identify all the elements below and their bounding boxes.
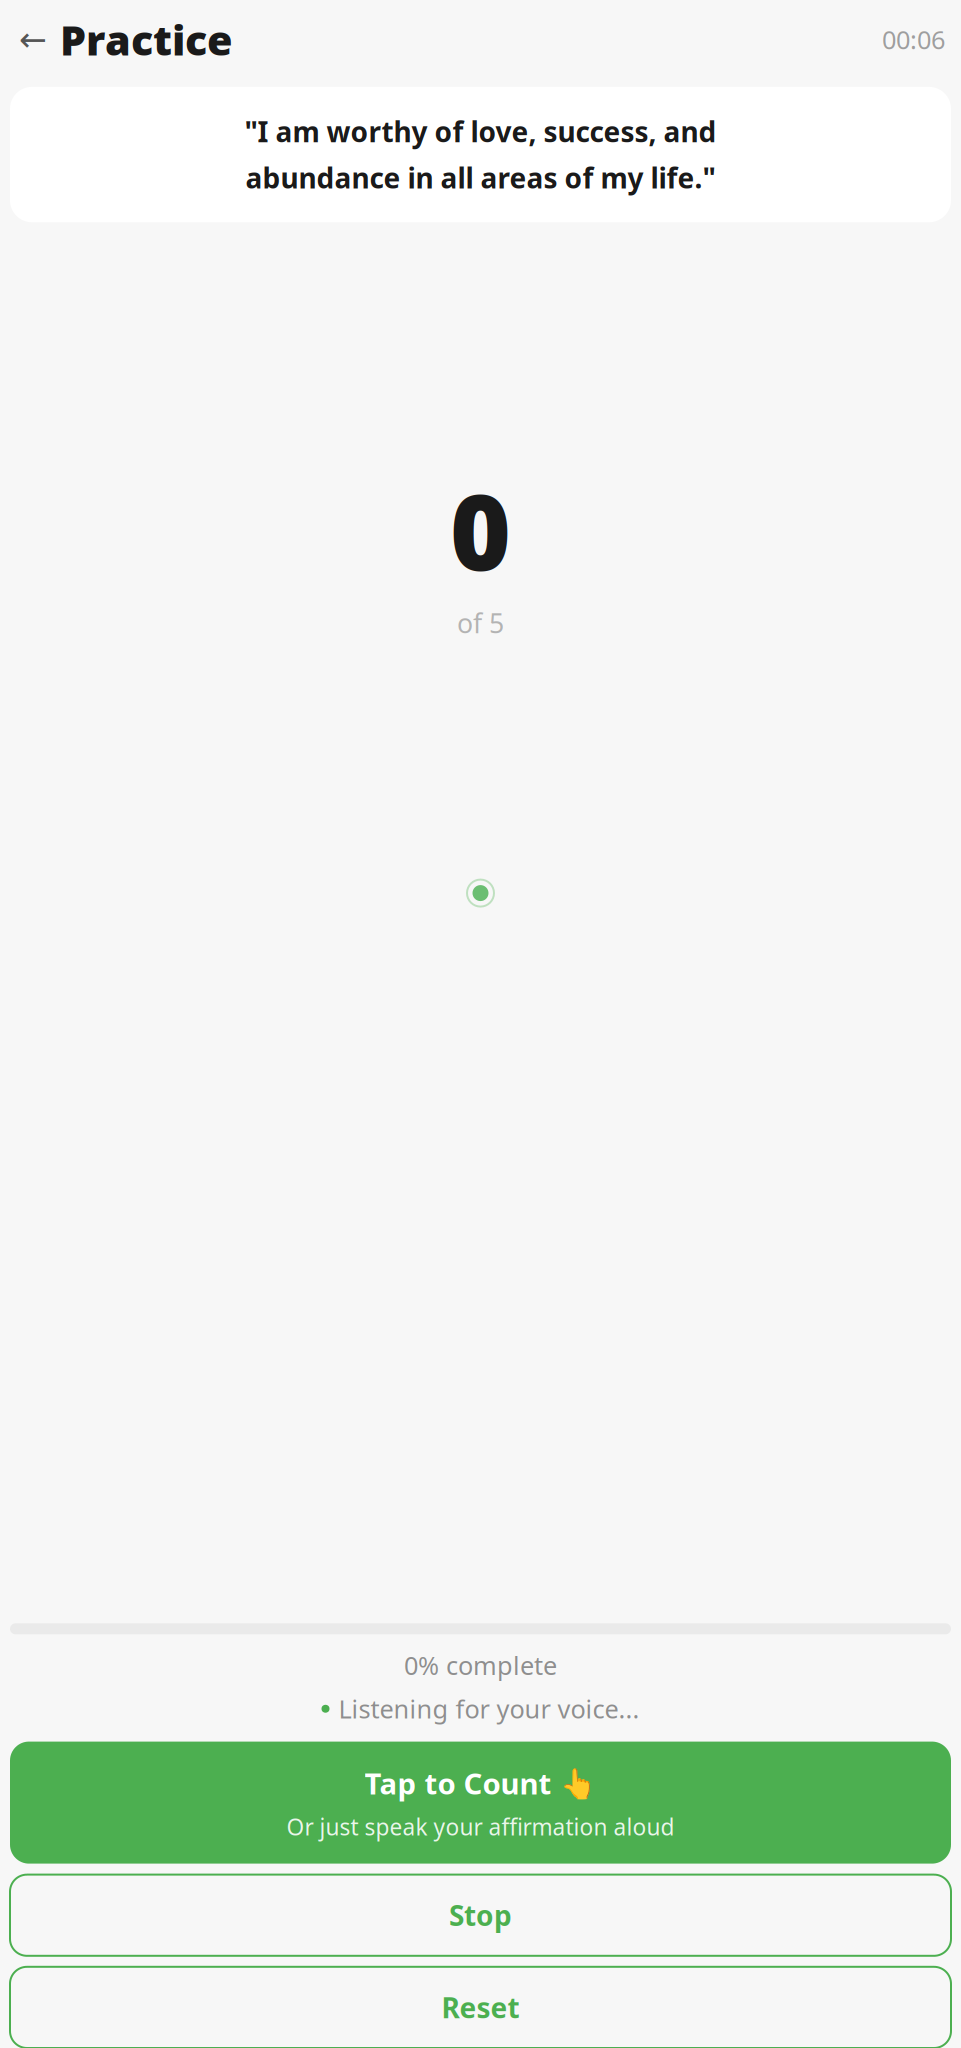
button[interactable]: Tap to Count 👆	[10, 1742, 951, 1864]
staticText: ←	[19, 20, 47, 58]
staticText: 0% complete	[404, 1648, 557, 1682]
staticText: abundance in all areas of my life."	[245, 159, 715, 196]
button[interactable]: Reset	[10, 1967, 951, 2048]
staticText: 0	[450, 461, 511, 599]
staticText: Practice	[60, 12, 233, 67]
staticText: Listening for your voice...	[338, 1692, 639, 1725]
button[interactable]: Back	[16, 22, 50, 56]
staticText: "I am worthy of love, success, and	[244, 113, 716, 150]
staticText: Stop	[449, 1897, 512, 1934]
staticText: Tap to Count 👆	[364, 1764, 596, 1803]
button[interactable]: Stop	[10, 1875, 951, 1956]
staticText: Reset	[441, 1989, 519, 2026]
staticText: Or just speak your affirmation aloud	[286, 1811, 674, 1842]
staticText: of 5	[457, 605, 504, 641]
staticText: 00:06	[882, 23, 945, 56]
